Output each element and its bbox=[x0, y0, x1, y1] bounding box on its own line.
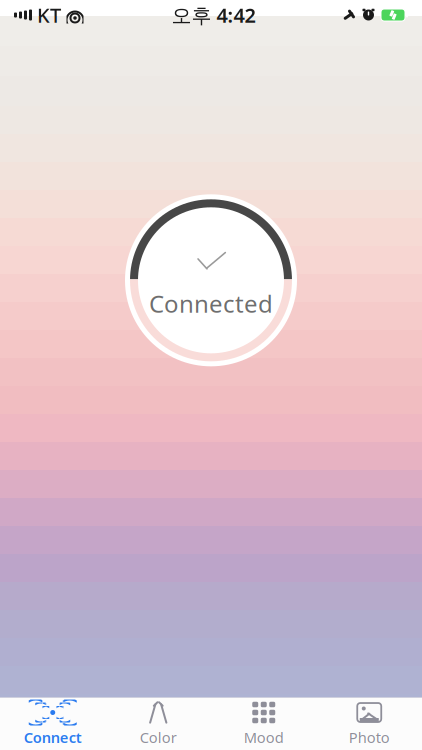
staticText: Connected bbox=[149, 287, 273, 319]
staticText: Color bbox=[140, 727, 177, 747]
staticText: Mood bbox=[244, 727, 284, 747]
button[interactable]: Connected bbox=[121, 190, 301, 370]
button[interactable]: Color bbox=[105, 698, 211, 750]
staticText: KT bbox=[37, 2, 61, 28]
button[interactable]: Mood bbox=[211, 698, 316, 750]
staticText: 오후 4:42 bbox=[171, 2, 255, 28]
staticText: Photo bbox=[349, 727, 390, 747]
staticText: Connect bbox=[24, 727, 82, 747]
button[interactable]: Photo bbox=[316, 698, 422, 750]
button[interactable]: Connect bbox=[0, 698, 105, 750]
